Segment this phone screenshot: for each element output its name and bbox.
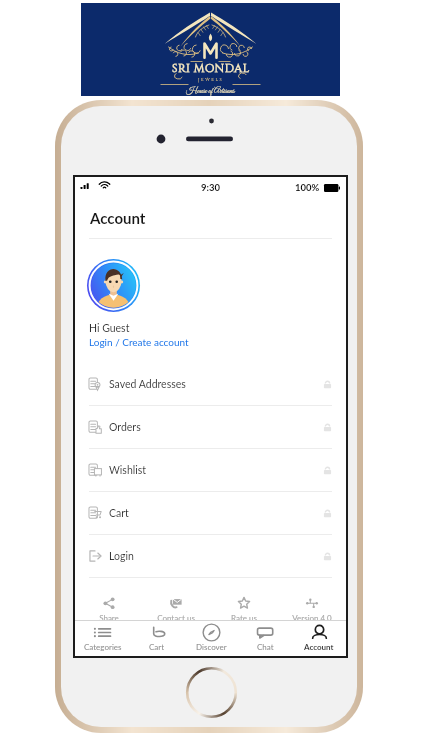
staticText: JEWELS xyxy=(198,77,224,83)
staticText: Account xyxy=(304,642,334,652)
staticText: Cart xyxy=(149,642,165,652)
staticText: SRI MONDAL xyxy=(172,61,250,77)
staticText: Hi Guest xyxy=(89,322,130,335)
staticText: Orders xyxy=(109,421,141,434)
staticText: Chat xyxy=(257,642,274,652)
staticText: Share xyxy=(99,613,119,623)
staticText: House of Artisans xyxy=(186,86,235,96)
button[interactable]: Contact us xyxy=(142,596,210,623)
staticText: Saved Addresses xyxy=(109,378,186,391)
button[interactable]: Saved Addresses xyxy=(75,363,346,405)
button[interactable]: Account xyxy=(292,621,346,656)
button[interactable]: Orders xyxy=(75,406,346,448)
staticText: 9:30 xyxy=(201,182,220,193)
staticText: Account xyxy=(90,209,146,227)
button[interactable]: Cart xyxy=(75,492,346,534)
button[interactable]: Chat xyxy=(238,621,292,656)
button[interactable]: Cart xyxy=(130,621,184,656)
staticText: Rate us xyxy=(231,613,257,623)
staticText: Discover xyxy=(196,642,227,652)
staticText: Cart xyxy=(109,507,129,520)
button[interactable]: Wishlist xyxy=(75,449,346,491)
button[interactable]: Login / Create account xyxy=(89,336,189,348)
button[interactable]: Rate us xyxy=(210,596,278,623)
staticText: 100% xyxy=(295,182,320,193)
button[interactable]: Discover xyxy=(184,621,238,656)
staticText: Login / Create account xyxy=(89,336,189,348)
button[interactable]: Share xyxy=(75,596,142,623)
button[interactable]: Categories xyxy=(75,621,130,656)
staticText: Categories xyxy=(84,642,122,652)
staticText: Version 4.0 xyxy=(292,613,332,623)
button[interactable]: Login xyxy=(75,535,346,577)
staticText: Wishlist xyxy=(109,464,147,477)
staticText: Login xyxy=(109,550,134,563)
button[interactable]: Version 4.0 xyxy=(278,596,346,623)
staticText: Contact us xyxy=(157,613,195,623)
